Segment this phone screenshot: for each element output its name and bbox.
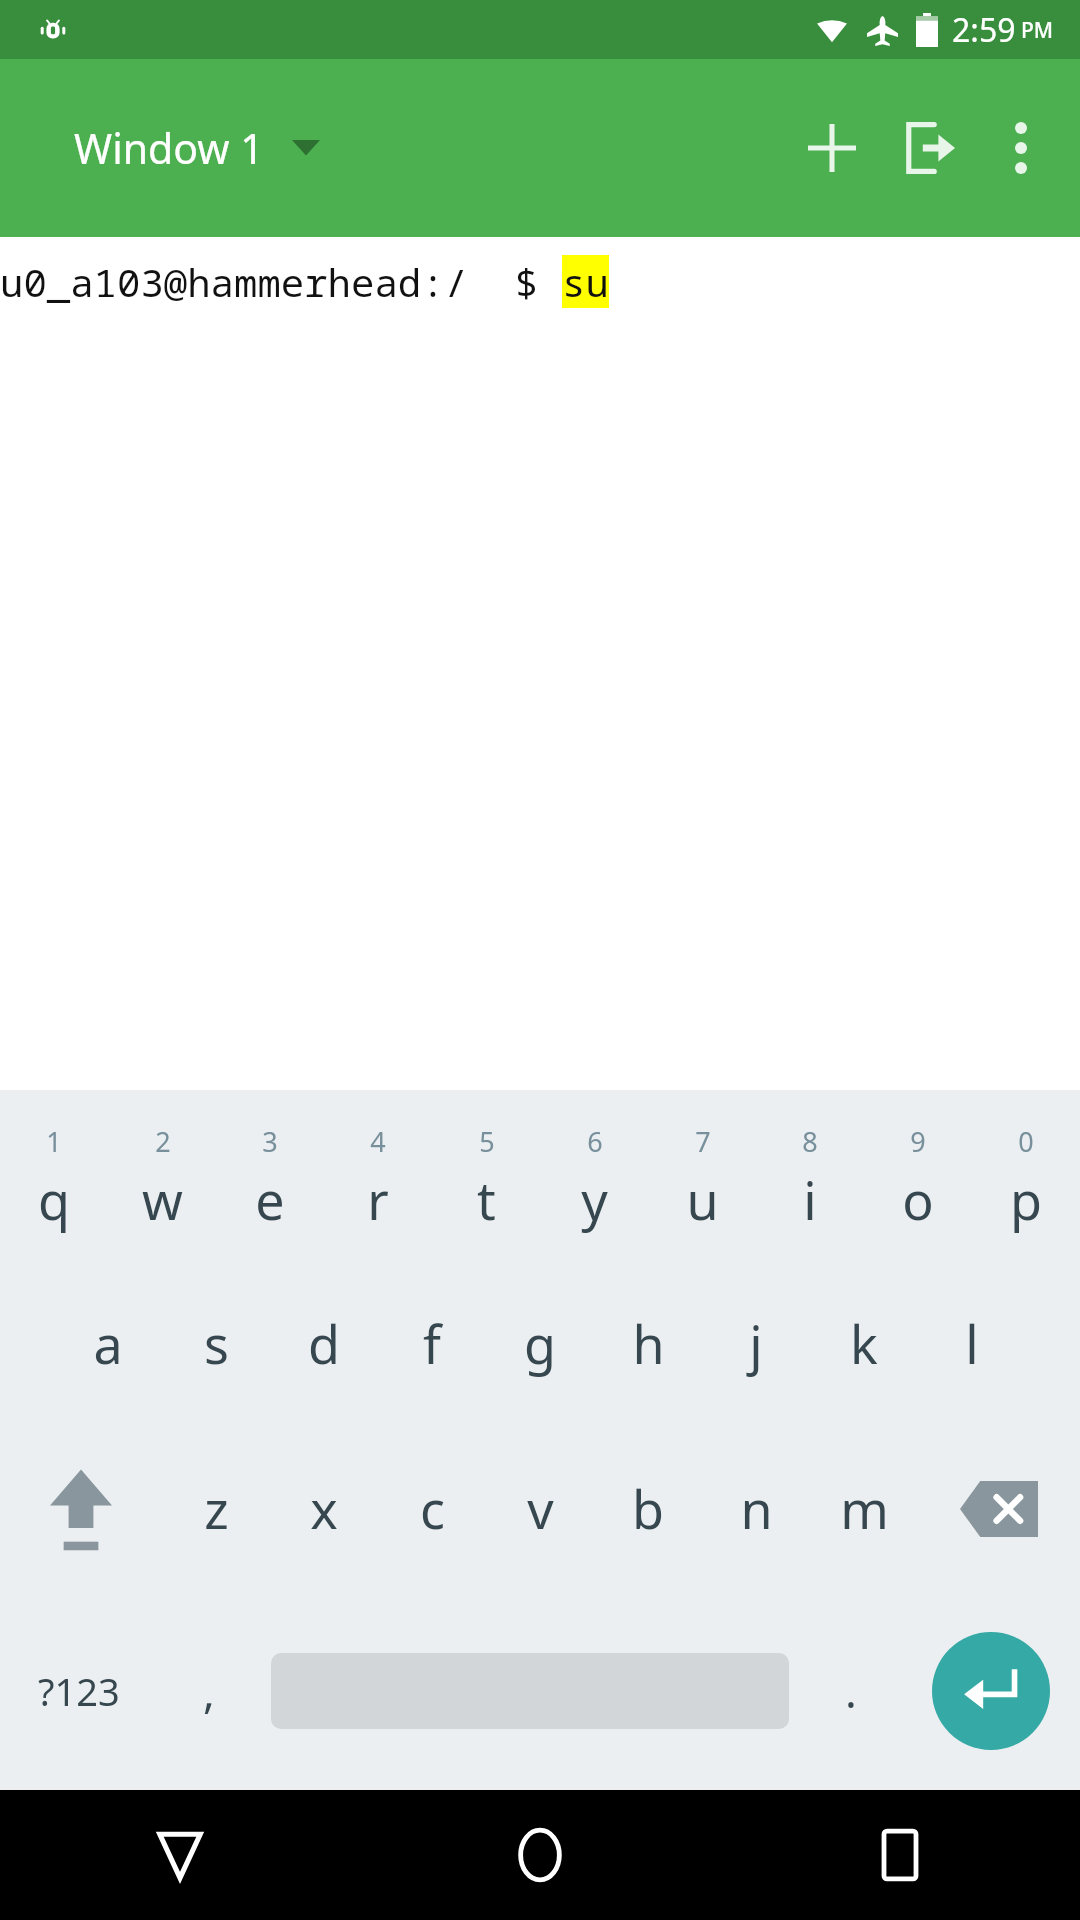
- button[interactable]: 3: [216, 1096, 324, 1261]
- button[interactable]: ?123: [0, 1591, 158, 1790]
- button[interactable]: c: [378, 1426, 486, 1591]
- staticText: z: [204, 1473, 229, 1544]
- button[interactable]: ,: [158, 1591, 260, 1790]
- staticText: 9: [910, 1123, 926, 1160]
- button[interactable]: Window 1: [74, 120, 320, 176]
- button[interactable]: New window: [784, 100, 880, 196]
- button[interactable]: l: [918, 1261, 1026, 1426]
- button[interactable]: h: [594, 1261, 702, 1426]
- staticText: .: [845, 1661, 857, 1721]
- button[interactable]: .: [800, 1591, 902, 1790]
- button[interactable]: z: [162, 1426, 270, 1591]
- staticText: r: [367, 1164, 389, 1235]
- staticText: Window 1: [74, 120, 264, 176]
- staticText: n: [740, 1473, 773, 1544]
- staticText: j: [749, 1308, 763, 1379]
- staticText: 6: [587, 1123, 603, 1160]
- staticText: m: [840, 1473, 889, 1544]
- staticText: 4: [370, 1123, 386, 1160]
- button[interactable]: 5: [432, 1096, 540, 1261]
- staticText: g: [524, 1308, 556, 1379]
- button[interactable]: v: [486, 1426, 594, 1591]
- button[interactable]: Enter: [902, 1591, 1080, 1790]
- staticText: x: [310, 1473, 338, 1544]
- button[interactable]: x: [270, 1426, 378, 1591]
- staticText: v: [527, 1473, 554, 1544]
- staticText: a: [93, 1308, 123, 1379]
- button[interactable]: 8: [756, 1096, 864, 1261]
- staticText: 5: [479, 1123, 495, 1160]
- staticText: e: [255, 1164, 285, 1235]
- button[interactable]: 2: [108, 1096, 216, 1261]
- staticText: su: [562, 255, 609, 308]
- button[interactable]: [260, 1591, 800, 1790]
- button[interactable]: 6: [540, 1096, 648, 1261]
- staticText: c: [420, 1473, 445, 1544]
- button[interactable]: f: [378, 1261, 486, 1426]
- staticText: u0_a103@hammerhead:/ $: [0, 255, 562, 308]
- staticText: ,: [203, 1661, 215, 1721]
- staticText: 2: [155, 1123, 171, 1160]
- button[interactable]: Shift: [0, 1426, 162, 1591]
- staticText: PM: [1021, 16, 1054, 45]
- staticText: t: [477, 1164, 496, 1235]
- staticText: h: [632, 1308, 665, 1379]
- button[interactable]: d: [270, 1261, 378, 1426]
- staticText: 0: [1018, 1123, 1034, 1160]
- staticText: f: [423, 1308, 441, 1379]
- button[interactable]: Recents: [720, 1790, 1080, 1920]
- button[interactable]: s: [162, 1261, 270, 1426]
- staticText: 2:59: [952, 8, 1016, 52]
- button[interactable]: 9: [864, 1096, 972, 1261]
- staticText: w: [142, 1164, 183, 1235]
- button[interactable]: j: [702, 1261, 810, 1426]
- button[interactable]: b: [594, 1426, 702, 1591]
- staticText: ?123: [38, 1665, 120, 1717]
- staticText: l: [965, 1308, 979, 1379]
- staticText: 3: [262, 1123, 278, 1160]
- staticText: u: [686, 1164, 719, 1235]
- button[interactable]: a: [54, 1261, 162, 1426]
- button[interactable]: 0: [972, 1096, 1080, 1261]
- staticText: 1: [46, 1123, 62, 1160]
- button[interactable]: 7: [648, 1096, 756, 1261]
- button[interactable]: 1: [0, 1096, 108, 1261]
- button[interactable]: g: [486, 1261, 594, 1426]
- button[interactable]: m: [810, 1426, 918, 1591]
- button[interactable]: More options: [976, 103, 1066, 193]
- button[interactable]: k: [810, 1261, 918, 1426]
- staticText: p: [1010, 1164, 1042, 1235]
- staticText: i: [803, 1164, 817, 1235]
- staticText: 7: [695, 1123, 711, 1160]
- staticText: q: [38, 1164, 70, 1235]
- staticText: b: [632, 1473, 664, 1544]
- staticText: s: [204, 1308, 229, 1379]
- button[interactable]: Exit: [880, 100, 976, 196]
- button[interactable]: Backspace: [918, 1426, 1080, 1591]
- staticText: d: [308, 1308, 340, 1379]
- button[interactable]: n: [702, 1426, 810, 1591]
- staticText: o: [902, 1164, 934, 1235]
- staticText: k: [850, 1308, 878, 1379]
- button[interactable]: Back: [0, 1790, 360, 1920]
- button[interactable]: 4: [324, 1096, 432, 1261]
- button[interactable]: Home: [360, 1790, 720, 1920]
- staticText: 8: [802, 1123, 818, 1160]
- staticText: y: [581, 1164, 608, 1235]
